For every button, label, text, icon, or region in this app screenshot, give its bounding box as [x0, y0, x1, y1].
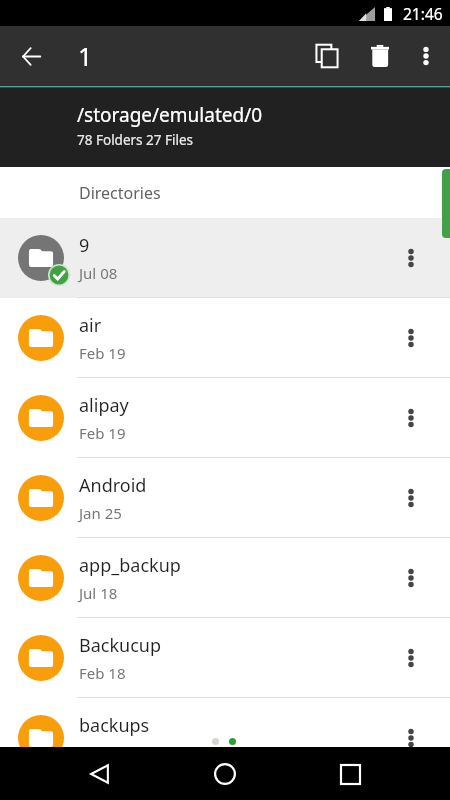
button[interactable]: app_backup — [0, 538, 450, 618]
button[interactable]: Back — [0, 28, 56, 84]
button[interactable]: More options — [402, 28, 450, 84]
button[interactable]: More options — [372, 298, 450, 378]
staticText: 21:46 — [403, 3, 443, 24]
button[interactable]: More options — [372, 458, 450, 538]
staticText: Jul 18 — [79, 583, 118, 603]
button[interactable]: air — [0, 298, 450, 378]
staticText: Jan 25 — [79, 503, 122, 523]
staticText: Feb 19 — [79, 343, 126, 363]
button[interactable]: Home — [201, 750, 249, 798]
staticText: Jul 08 — [79, 263, 118, 283]
staticText: Feb 19 — [79, 423, 126, 443]
button[interactable]: backups — [0, 698, 450, 747]
staticText: backups — [79, 713, 150, 738]
staticText: /storage/emulated/0 — [77, 102, 263, 128]
staticText: Backucup — [79, 633, 162, 658]
staticText: alipay — [79, 393, 129, 418]
staticText: air — [79, 313, 102, 338]
button[interactable]: Copy — [302, 31, 352, 81]
button[interactable]: More options — [372, 218, 450, 298]
staticText: Directories — [79, 182, 161, 204]
button[interactable]: More options — [372, 378, 450, 458]
button[interactable]: More options — [372, 618, 450, 698]
staticText: 78 Folders 27 Files — [77, 131, 194, 149]
staticText: app_backup — [79, 553, 181, 578]
button[interactable]: Android — [0, 458, 450, 538]
button[interactable]: Delete — [352, 31, 402, 81]
staticText: Feb 18 — [79, 663, 126, 683]
button[interactable]: Backucup — [0, 618, 450, 698]
button[interactable]: More options — [372, 698, 450, 747]
button[interactable]: 9 — [0, 218, 450, 298]
button[interactable]: More options — [372, 538, 450, 618]
button[interactable]: Recents — [326, 750, 374, 798]
button[interactable]: Back — [77, 750, 125, 798]
staticText: 1 — [78, 39, 93, 73]
staticText: 9 — [79, 233, 90, 258]
staticText: Android — [79, 473, 147, 498]
button[interactable]: alipay — [0, 378, 450, 458]
